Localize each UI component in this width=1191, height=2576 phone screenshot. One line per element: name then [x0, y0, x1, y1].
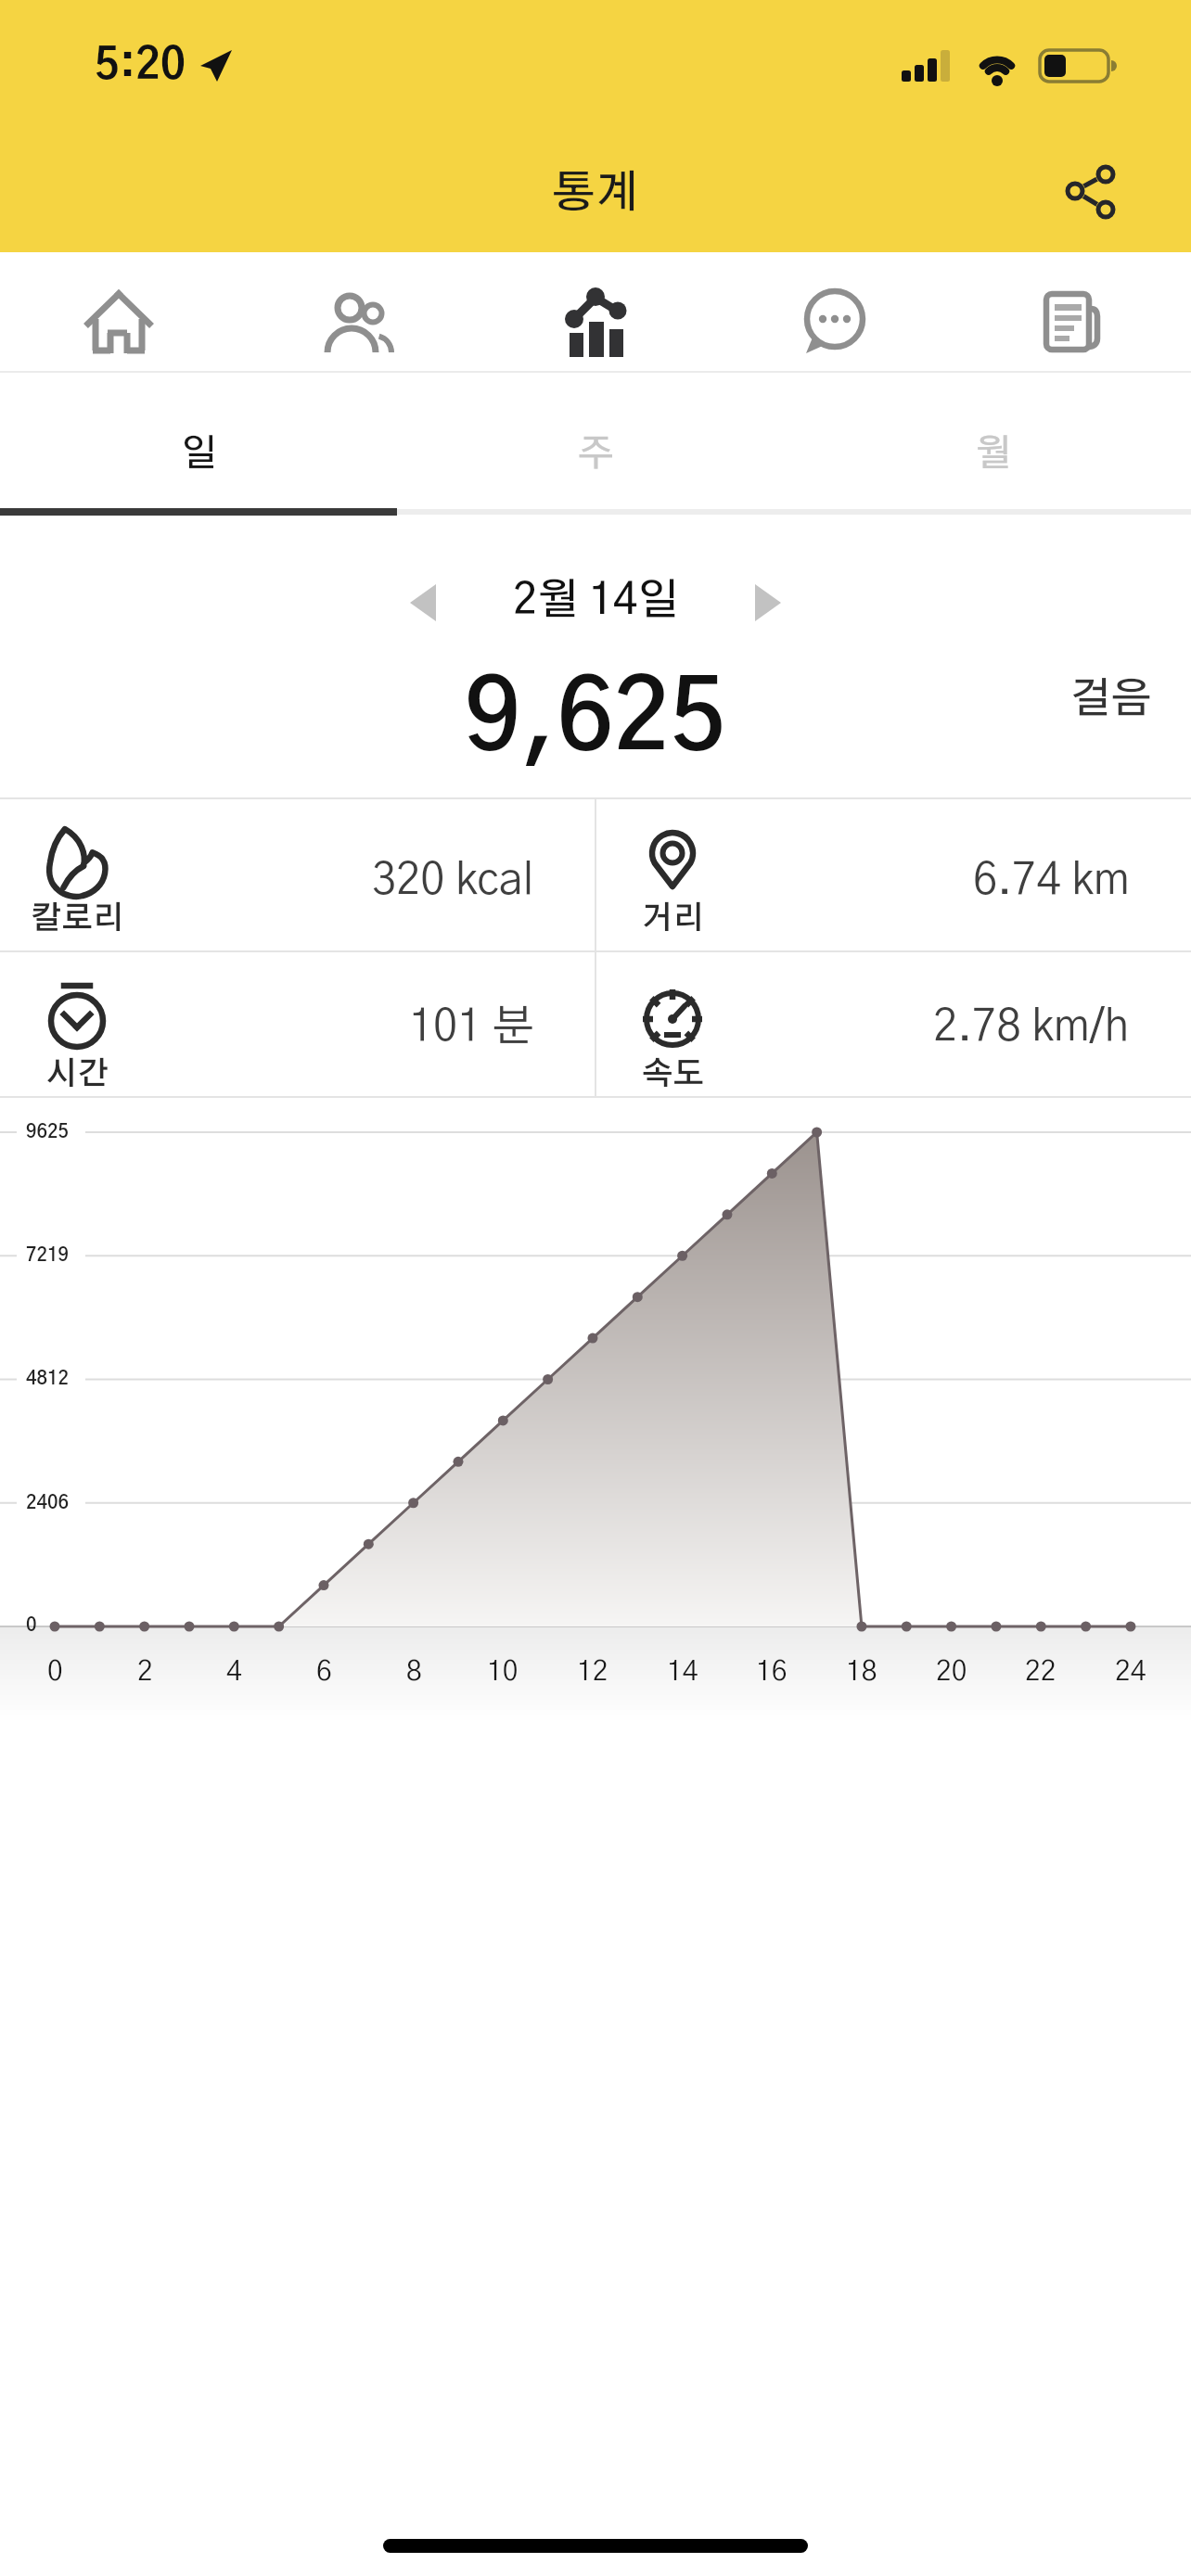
- button[interactable]: [393, 573, 453, 632]
- staticText: 일: [181, 436, 217, 473]
- staticText: 주: [578, 436, 614, 473]
- staticText: 18: [846, 1658, 877, 1686]
- staticText: 칼로리: [31, 903, 124, 935]
- button[interactable]: 시간: [0, 952, 595, 1103]
- staticText: 월: [975, 436, 1011, 473]
- staticText: 통계: [552, 172, 639, 216]
- staticText: 5:20: [95, 45, 186, 87]
- staticText: 101 분: [409, 1006, 534, 1050]
- staticText: 0: [47, 1658, 63, 1686]
- button[interactable]: 월: [794, 373, 1191, 508]
- staticText: 320 kcal: [372, 860, 534, 903]
- staticText: 2.78 km/h: [933, 1006, 1130, 1050]
- button[interactable]: [237, 252, 476, 371]
- button[interactable]: [738, 573, 798, 632]
- staticText: 2406: [26, 1494, 70, 1512]
- staticText: 거리: [642, 903, 704, 935]
- staticText: 7219: [26, 1246, 70, 1265]
- button[interactable]: 일: [0, 373, 397, 508]
- button[interactable]: [1056, 156, 1122, 223]
- staticText: 16: [756, 1658, 788, 1686]
- staticText: 시간: [46, 1059, 109, 1090]
- staticText: 걸음: [1070, 679, 1152, 721]
- staticText: 24: [1115, 1658, 1146, 1686]
- staticText: 10: [487, 1658, 519, 1686]
- staticText: 12: [577, 1658, 608, 1686]
- staticText: 9,625: [465, 670, 727, 769]
- staticText: 6.74 km: [973, 860, 1130, 903]
- staticText: 20: [936, 1658, 967, 1686]
- staticText: 2: [137, 1658, 153, 1686]
- staticText: 6: [316, 1658, 332, 1686]
- button[interactable]: 속도: [595, 952, 1191, 1103]
- staticText: 9625: [26, 1123, 70, 1141]
- button[interactable]: [0, 252, 237, 371]
- staticText: 8: [406, 1658, 422, 1686]
- button[interactable]: 거리: [595, 799, 1191, 950]
- staticText: 4812: [26, 1370, 70, 1388]
- staticText: 22: [1025, 1658, 1057, 1686]
- button[interactable]: [476, 252, 714, 371]
- staticText: 2월 14일: [513, 580, 679, 622]
- staticText: 0: [26, 1616, 37, 1635]
- button[interactable]: [714, 252, 953, 371]
- button[interactable]: [953, 252, 1191, 371]
- button[interactable]: 주: [397, 373, 794, 508]
- staticText: 4: [226, 1658, 242, 1686]
- staticText: 속도: [642, 1059, 704, 1090]
- staticText: 14: [667, 1658, 698, 1686]
- button[interactable]: 칼로리: [0, 799, 595, 950]
